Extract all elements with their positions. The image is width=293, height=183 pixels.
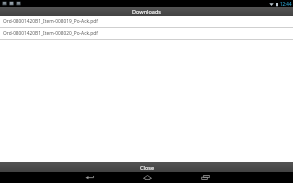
- staticText: Ord-08001420B1_Item-008020_Po-Ack.pdf: [3, 30, 98, 37]
- button[interactable]: Recent apps: [183, 172, 227, 183]
- staticText: Ord-08001420B1_Item-008019_Po-Ack.pdf: [3, 18, 98, 25]
- staticText: 12:44: [280, 1, 292, 7]
- staticText: Close: [140, 164, 154, 171]
- staticText: Downloads: [132, 8, 161, 15]
- button[interactable]: Home: [125, 172, 169, 183]
- button[interactable]: Ord-08001420B1_Item-008019_Po-Ack.pdf: [0, 16, 293, 28]
- button[interactable]: Close: [0, 162, 293, 172]
- button[interactable]: Ord-08001420B1_Item-008020_Po-Ack.pdf: [0, 28, 293, 40]
- button[interactable]: Back: [67, 172, 111, 183]
